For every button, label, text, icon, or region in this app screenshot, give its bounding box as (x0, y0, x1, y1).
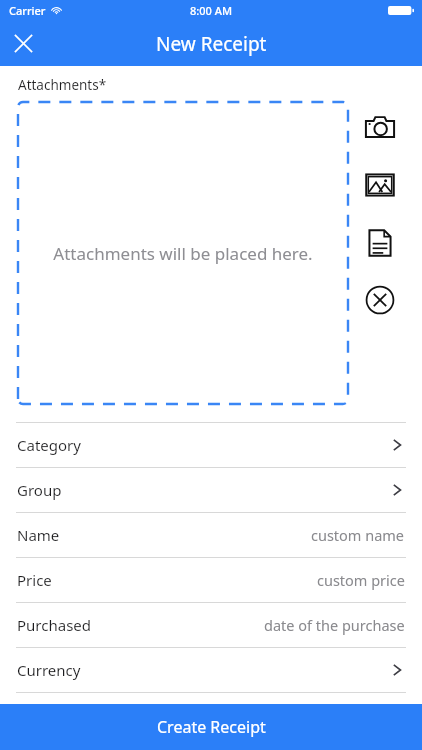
button[interactable]: Choose image (362, 167, 398, 203)
staticText: Attachments will be placed here. (53, 242, 313, 265)
staticText: Attachments* (18, 76, 107, 94)
button[interactable]: Purchased (0, 603, 422, 647)
button[interactable]: Name (0, 513, 422, 557)
staticText: 8:00 AM (190, 3, 233, 18)
button[interactable]: Take photo (362, 110, 398, 146)
staticText: date of the purchase (264, 615, 405, 635)
button[interactable]: Currency (0, 648, 422, 692)
button[interactable]: Create Receipt (0, 704, 422, 750)
button[interactable]: Attach document (362, 225, 398, 261)
staticText: Create Receipt (157, 716, 266, 738)
button[interactable]: Close (0, 21, 46, 66)
button[interactable]: Group (0, 468, 422, 512)
staticText: Name (17, 525, 60, 545)
button[interactable]: Price (0, 558, 422, 602)
staticText: Price (17, 570, 52, 590)
staticText: Carrier (9, 3, 46, 18)
staticText: New Receipt (156, 31, 267, 57)
staticText: custom name (311, 525, 405, 545)
staticText: Group (17, 480, 62, 500)
staticText: Purchased (17, 615, 91, 635)
button[interactable]: Category (0, 423, 422, 467)
staticText: custom price (317, 570, 405, 590)
staticText: Currency (17, 660, 81, 680)
button[interactable]: Attachments drop area (18, 102, 348, 404)
staticText: Category (17, 435, 81, 455)
button[interactable]: Remove attachments (362, 282, 398, 318)
